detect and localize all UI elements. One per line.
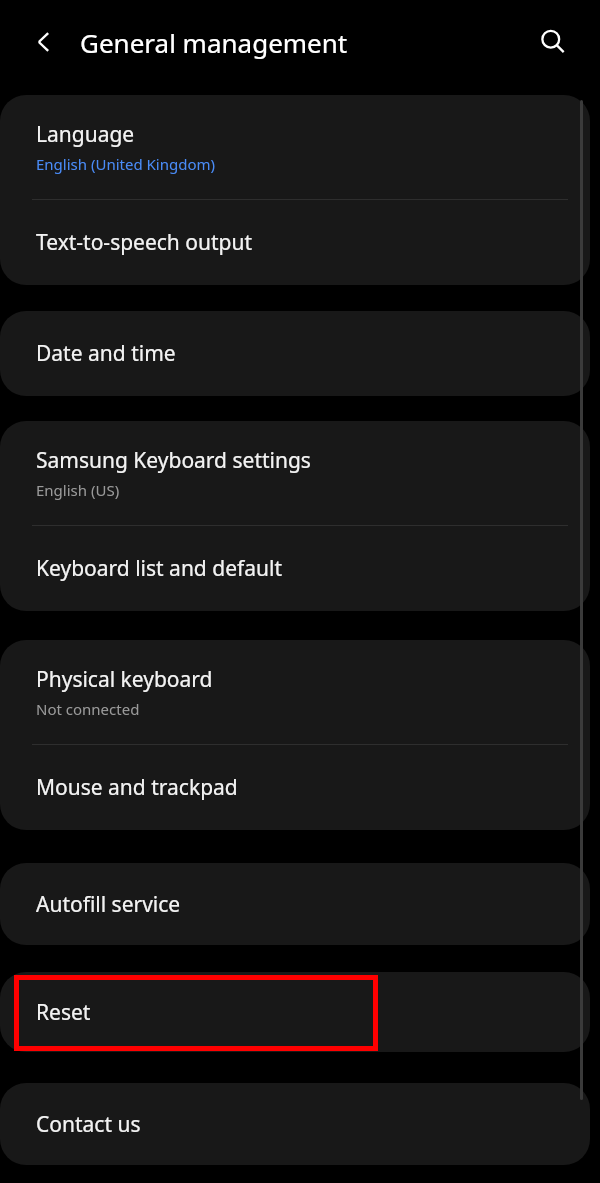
button[interactable]: Mouse and trackpad	[0, 745, 590, 830]
staticText: Keyboard list and default	[36, 554, 282, 583]
button[interactable]: Date and time	[0, 311, 590, 396]
staticText: General management	[80, 25, 348, 60]
button[interactable]: Samsung Keyboard settings	[0, 421, 590, 525]
button[interactable]: Text-to-speech output	[0, 200, 590, 285]
staticText: Date and time	[36, 339, 176, 368]
staticText: Reset	[36, 998, 91, 1027]
staticText: English (US)	[36, 480, 120, 500]
staticText: Not connected	[36, 699, 140, 719]
button[interactable]: Language	[0, 95, 590, 199]
staticText: Autofill service	[36, 890, 181, 919]
staticText: English (United Kingdom)	[36, 154, 216, 174]
staticText: Physical keyboard	[36, 665, 213, 694]
button[interactable]: Physical keyboard	[0, 640, 590, 744]
staticText: Mouse and trackpad	[36, 773, 238, 802]
button[interactable]: Contact us	[0, 1083, 590, 1165]
button[interactable]: Search	[529, 18, 577, 66]
button[interactable]: Keyboard list and default	[0, 526, 590, 611]
button[interactable]: Reset	[0, 972, 590, 1052]
staticText: Text-to-speech output	[36, 228, 253, 257]
staticText: Samsung Keyboard settings	[36, 446, 311, 475]
button[interactable]: Back	[20, 18, 68, 66]
button[interactable]: Autofill service	[0, 863, 590, 945]
staticText: Language	[36, 120, 135, 149]
staticText: Contact us	[36, 1110, 141, 1139]
